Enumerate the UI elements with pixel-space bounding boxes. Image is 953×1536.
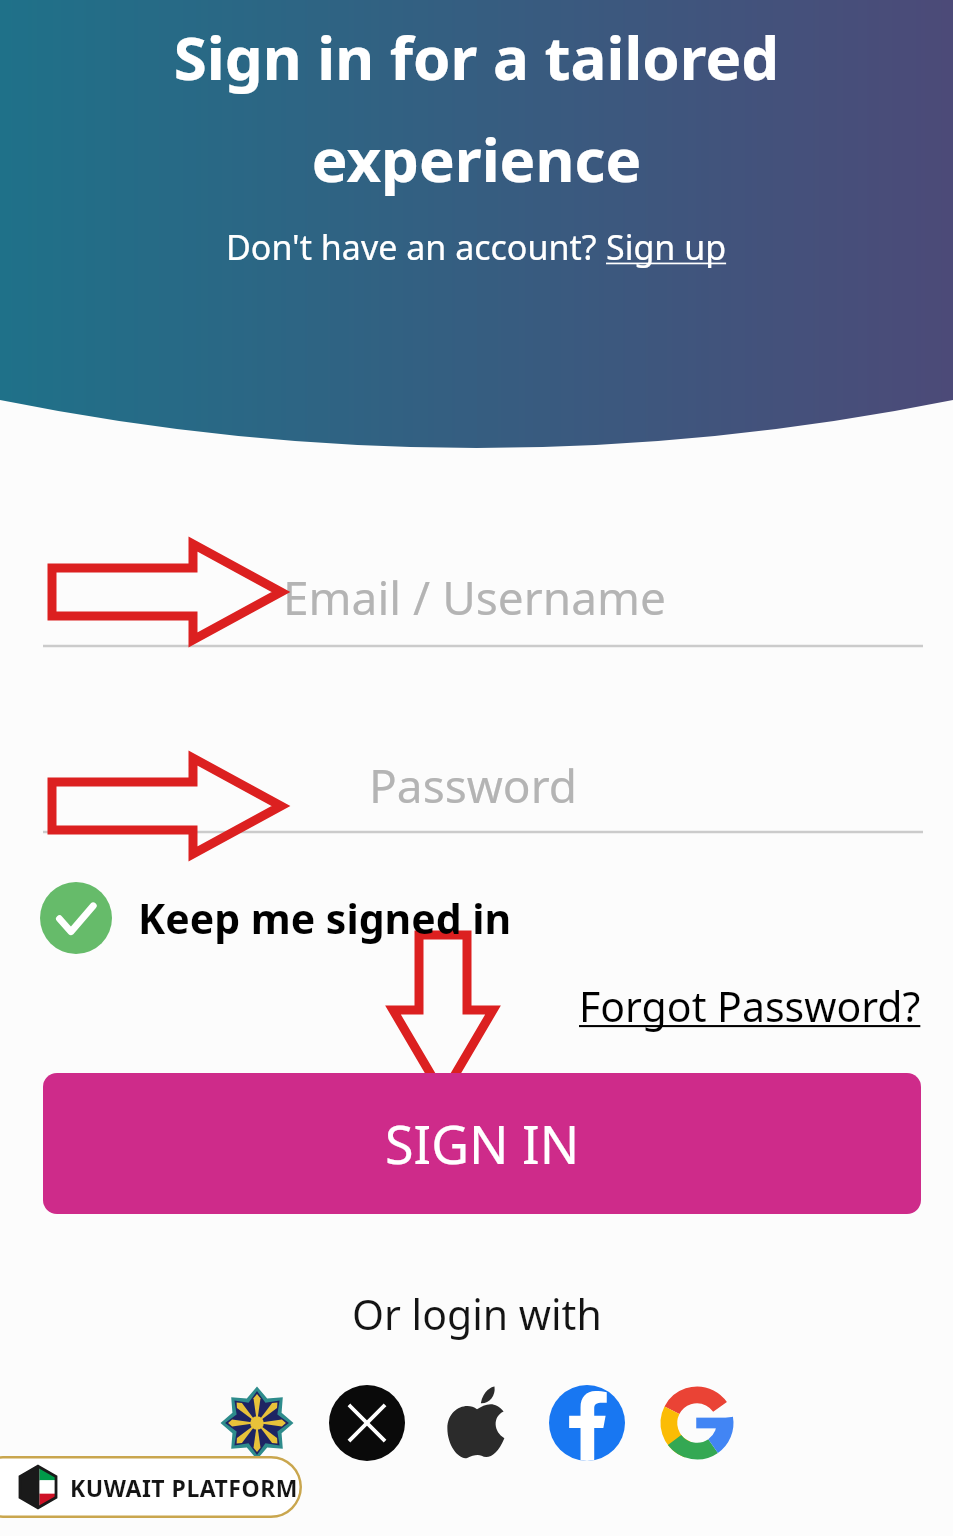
button[interactable]: Sign in with Kuwait ID (214, 1380, 300, 1466)
staticText: KUWAIT PLATFORM (70, 1472, 298, 1503)
button[interactable]: Forgot Password? (573, 972, 927, 1040)
staticText: Don't have an account? (226, 224, 606, 270)
staticText: SIGN IN (385, 1108, 580, 1179)
staticText: Password (369, 754, 578, 817)
staticText: Forgot Password? (579, 978, 921, 1034)
button[interactable]: Sign in with Facebook (544, 1380, 630, 1466)
staticText: Email / Username (283, 566, 666, 629)
button[interactable]: KUWAIT PLATFORM (0, 1456, 302, 1518)
button[interactable]: Sign in with Google (654, 1380, 740, 1466)
button[interactable]: Keep me signed in (40, 881, 512, 955)
button[interactable]: Email / Username (43, 548, 923, 646)
button[interactable]: Password (43, 738, 923, 832)
staticText: Or login with (352, 1286, 602, 1342)
staticText: Keep me signed in (138, 890, 512, 946)
button[interactable]: Sign in with X (324, 1380, 410, 1466)
staticText: Sign up (606, 224, 727, 270)
button[interactable]: Sign up (606, 224, 727, 270)
staticText: Sign in for a tailored experience (56, 16, 897, 200)
button[interactable]: Sign in with Apple (434, 1380, 520, 1466)
button[interactable]: SIGN IN (43, 1073, 921, 1214)
